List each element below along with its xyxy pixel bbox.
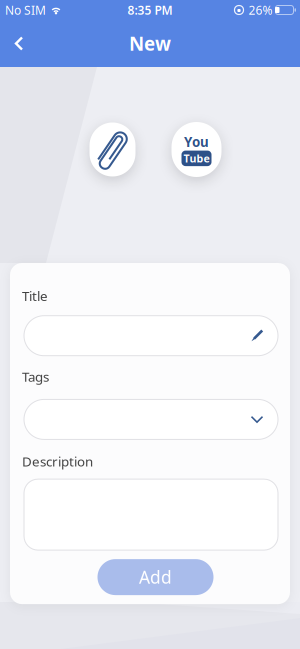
staticText: No SIM	[5, 2, 46, 18]
staticText: 8:35 PM	[127, 2, 172, 18]
staticText: Description	[22, 452, 93, 470]
staticText: Tube	[183, 151, 209, 165]
button[interactable]: Description text field	[24, 479, 278, 550]
button[interactable]: Attach file	[89, 122, 135, 176]
button[interactable]: Tags selector	[24, 399, 278, 439]
button[interactable]: Add	[97, 559, 213, 595]
button[interactable]: YouTube	[171, 122, 221, 177]
staticText: New	[129, 31, 171, 56]
staticText: Title	[22, 287, 48, 305]
staticText: Add	[139, 566, 172, 589]
staticText: You	[184, 133, 209, 151]
staticText: 26%	[248, 2, 272, 18]
button[interactable]: Back	[8, 30, 34, 56]
staticText: Tags	[22, 368, 49, 385]
button[interactable]: Title text field	[24, 316, 278, 356]
